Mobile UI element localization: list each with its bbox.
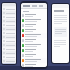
button[interactable] bbox=[21, 38, 47, 43]
button[interactable] bbox=[2, 11, 16, 15]
button[interactable] bbox=[2, 63, 16, 64]
button[interactable] bbox=[21, 48, 47, 53]
button[interactable] bbox=[2, 27, 16, 31]
button[interactable] bbox=[52, 4, 69, 8]
button[interactable]: Home bbox=[21, 3, 47, 67]
button[interactable] bbox=[2, 15, 16, 19]
button[interactable] bbox=[21, 43, 47, 48]
button[interactable] bbox=[2, 3, 16, 64]
button[interactable] bbox=[2, 7, 16, 11]
button[interactable] bbox=[2, 47, 16, 51]
button[interactable] bbox=[2, 39, 16, 43]
button[interactable] bbox=[21, 33, 47, 38]
button[interactable] bbox=[21, 3, 47, 8]
button[interactable] bbox=[21, 63, 47, 67]
button[interactable] bbox=[2, 59, 16, 63]
button[interactable] bbox=[2, 23, 16, 27]
button[interactable] bbox=[2, 55, 16, 59]
button[interactable] bbox=[21, 58, 47, 63]
button[interactable] bbox=[21, 23, 47, 28]
button[interactable] bbox=[21, 28, 47, 33]
button[interactable] bbox=[52, 4, 69, 63]
button[interactable] bbox=[21, 13, 47, 18]
button[interactable] bbox=[2, 35, 16, 39]
button[interactable] bbox=[21, 53, 47, 58]
button[interactable] bbox=[23, 10, 47, 13]
button[interactable] bbox=[2, 19, 16, 23]
button[interactable] bbox=[2, 31, 16, 35]
button[interactable] bbox=[54, 27, 67, 37]
button[interactable] bbox=[2, 51, 16, 55]
button[interactable] bbox=[21, 18, 47, 23]
button[interactable] bbox=[2, 43, 16, 47]
